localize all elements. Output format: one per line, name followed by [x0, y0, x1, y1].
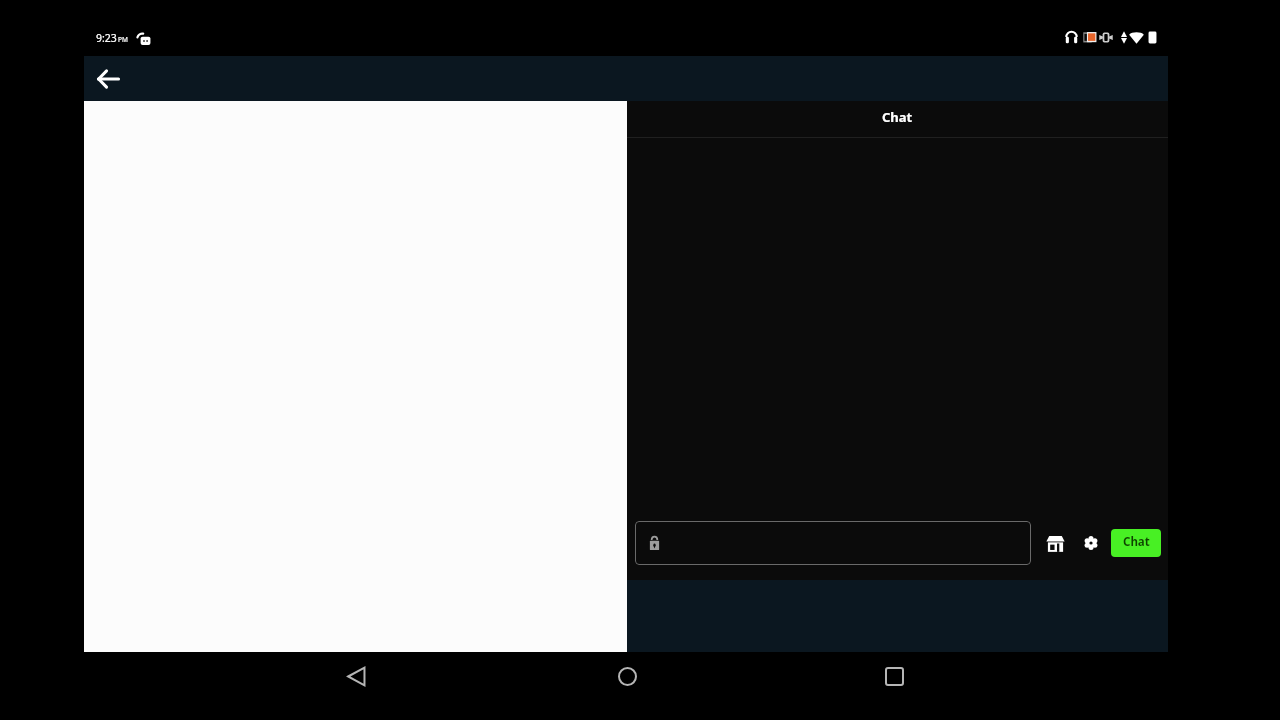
button[interactable]: Chat: [1111, 529, 1161, 557]
button[interactable]: Home: [610, 659, 644, 693]
button[interactable]: Back: [339, 659, 373, 693]
button[interactable]: Store: [1043, 531, 1067, 555]
staticText: 9:23: [96, 31, 117, 45]
button[interactable]: Recents: [877, 659, 911, 693]
staticText: Chat: [882, 108, 913, 126]
staticText: Chat: [1123, 534, 1150, 550]
button[interactable]: Settings: [1079, 531, 1103, 555]
button[interactable]: [635, 521, 1031, 565]
staticText: PM: [118, 35, 128, 44]
button[interactable]: Back: [88, 59, 128, 99]
